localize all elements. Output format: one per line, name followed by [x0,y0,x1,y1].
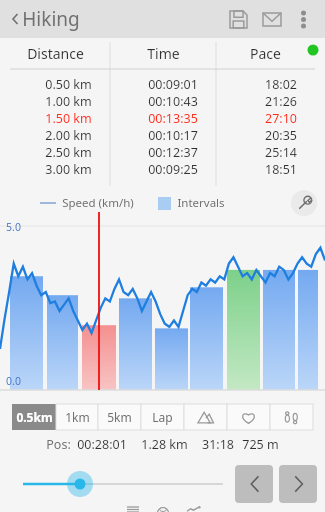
button[interactable]: Hiking [6,6,84,32]
staticText: 18:51 [265,161,297,178]
staticText: Speed (km/h) [62,195,134,211]
staticText: 27:10 [265,110,297,127]
staticText: Time [147,44,180,63]
staticText: 3.00 km [45,161,92,178]
staticText: 5.0 [6,220,21,234]
staticText: 1km [65,409,90,425]
staticText: 31:18 [202,436,234,453]
button[interactable]: 3.00 km [0,161,325,178]
button[interactable]: Steps [270,404,313,430]
staticText: Intervals [177,195,225,211]
staticText: 00:10:17 [148,127,198,144]
button[interactable]: 1km [56,404,98,430]
button[interactable]: 2.50 km [0,144,325,161]
button[interactable]: Mail [255,2,289,36]
button[interactable]: Elevation [184,404,227,430]
staticText: 00:09:25 [148,161,198,178]
staticText: Distance [27,44,84,63]
staticText: 00:13:35 [148,110,198,127]
button[interactable]: Position slider [0,461,235,507]
staticText: 00:12:37 [148,144,198,161]
staticText: 18:02 [265,76,297,93]
staticText: 1.00 km [45,93,92,110]
button[interactable]: 5km [98,404,141,430]
staticText: 2.50 km [45,144,92,161]
button[interactable]: Chart [181,507,205,512]
staticText: 725 m [242,436,279,453]
staticText: 5km [107,409,132,425]
staticText: 1.28 km [141,436,188,453]
button[interactable]: More options [289,5,317,33]
staticText: Pace [250,44,281,63]
staticText: Lap [152,409,173,425]
button[interactable]: Lap [141,404,184,430]
button[interactable]: 0.50 km [0,76,325,93]
staticText: 00:28:01 [77,436,127,453]
button[interactable]: 2.00 km [0,127,325,144]
staticText: 20:35 [265,127,297,144]
button[interactable]: 1.50 km [0,110,325,127]
button[interactable]: Map [151,507,175,512]
button[interactable]: Save [221,2,255,36]
button[interactable]: List [121,507,145,512]
staticText: Pos: [46,436,71,453]
staticText: 21:26 [265,93,297,110]
staticText: 25:14 [265,144,297,161]
button[interactable]: 0.5km [12,404,56,430]
staticText: 00:09:01 [148,76,198,93]
button[interactable]: Heart rate [227,404,270,430]
staticText: 0.0 [6,374,21,388]
staticText: Hiking [22,6,80,32]
staticText: 0.50 km [45,76,92,93]
staticText: 00:10:43 [148,93,198,110]
staticText: 2.00 km [45,127,92,144]
button[interactable]: Previous [235,465,273,503]
button[interactable]: Next [279,465,317,503]
button[interactable]: Settings [291,190,317,216]
staticText: 1.50 km [45,110,92,127]
staticText: 0.5km [16,409,53,425]
button[interactable]: 1.00 km [0,93,325,110]
